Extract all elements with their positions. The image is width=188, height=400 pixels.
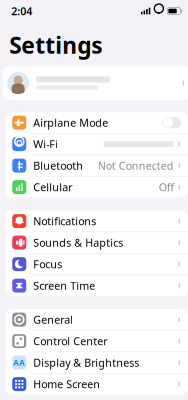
staticText: Off bbox=[159, 180, 174, 194]
button[interactable]: Wi-Fi bbox=[5, 134, 188, 155]
button[interactable]: Bluetooth bbox=[5, 155, 188, 177]
staticText: Focus bbox=[33, 257, 62, 271]
staticText: Display & Brightness bbox=[33, 355, 139, 370]
button[interactable]: Airplane Mode bbox=[5, 112, 188, 134]
staticText: Screen Time bbox=[33, 278, 95, 293]
button[interactable]: Screen Time bbox=[5, 275, 188, 296]
button[interactable] bbox=[2, 66, 188, 100]
staticText: 2:04 bbox=[11, 4, 32, 18]
staticText: Bluetooth bbox=[33, 158, 83, 173]
button[interactable]: Notifications bbox=[5, 211, 188, 232]
staticText: Notifications bbox=[33, 214, 96, 228]
button[interactable]: Control Center bbox=[5, 331, 188, 352]
button[interactable]: General bbox=[5, 309, 188, 331]
button[interactable]: Home Screen bbox=[5, 374, 188, 395]
staticText: Not Connected bbox=[98, 158, 174, 173]
staticText: Home Screen bbox=[33, 377, 100, 391]
button[interactable]: Focus bbox=[5, 254, 188, 275]
staticText: Airplane Mode bbox=[33, 115, 108, 130]
button[interactable]: AA bbox=[5, 352, 188, 374]
button[interactable]: Cellular bbox=[5, 177, 188, 198]
staticText: Settings bbox=[9, 30, 102, 60]
staticText: Wi-Fi bbox=[33, 137, 58, 151]
staticText: Cellular bbox=[33, 180, 72, 194]
staticText: Control Center bbox=[33, 334, 107, 348]
staticText: AA bbox=[13, 357, 25, 368]
staticText: General bbox=[33, 312, 73, 327]
button[interactable]: Sounds & Haptics bbox=[5, 232, 188, 254]
staticText: Sounds & Haptics bbox=[33, 235, 123, 250]
